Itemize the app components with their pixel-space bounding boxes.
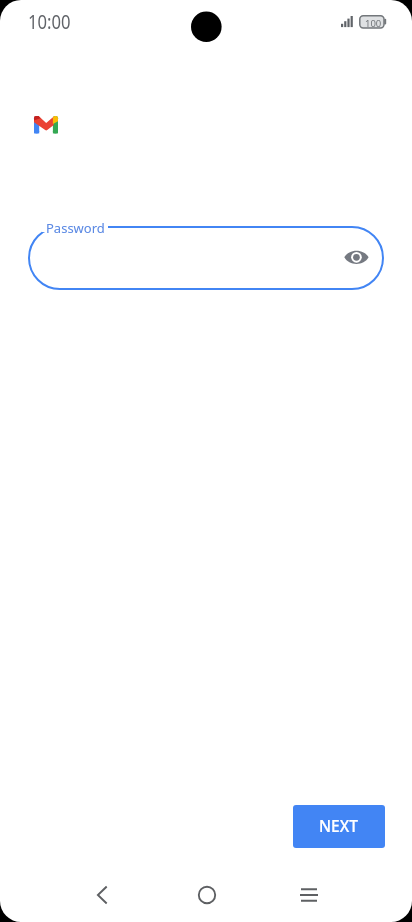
button[interactable]: Back bbox=[80, 873, 124, 917]
staticText: NEXT bbox=[319, 815, 358, 836]
staticText: 100 bbox=[365, 17, 382, 30]
staticText: Password bbox=[46, 219, 105, 237]
button[interactable]: Home bbox=[185, 873, 229, 917]
button[interactable]: Recent apps bbox=[287, 873, 331, 917]
button[interactable]: Password bbox=[28, 226, 384, 290]
button[interactable]: NEXT bbox=[293, 805, 385, 848]
button[interactable]: Show password bbox=[335, 237, 377, 279]
staticText: 10:00 bbox=[28, 9, 71, 35]
